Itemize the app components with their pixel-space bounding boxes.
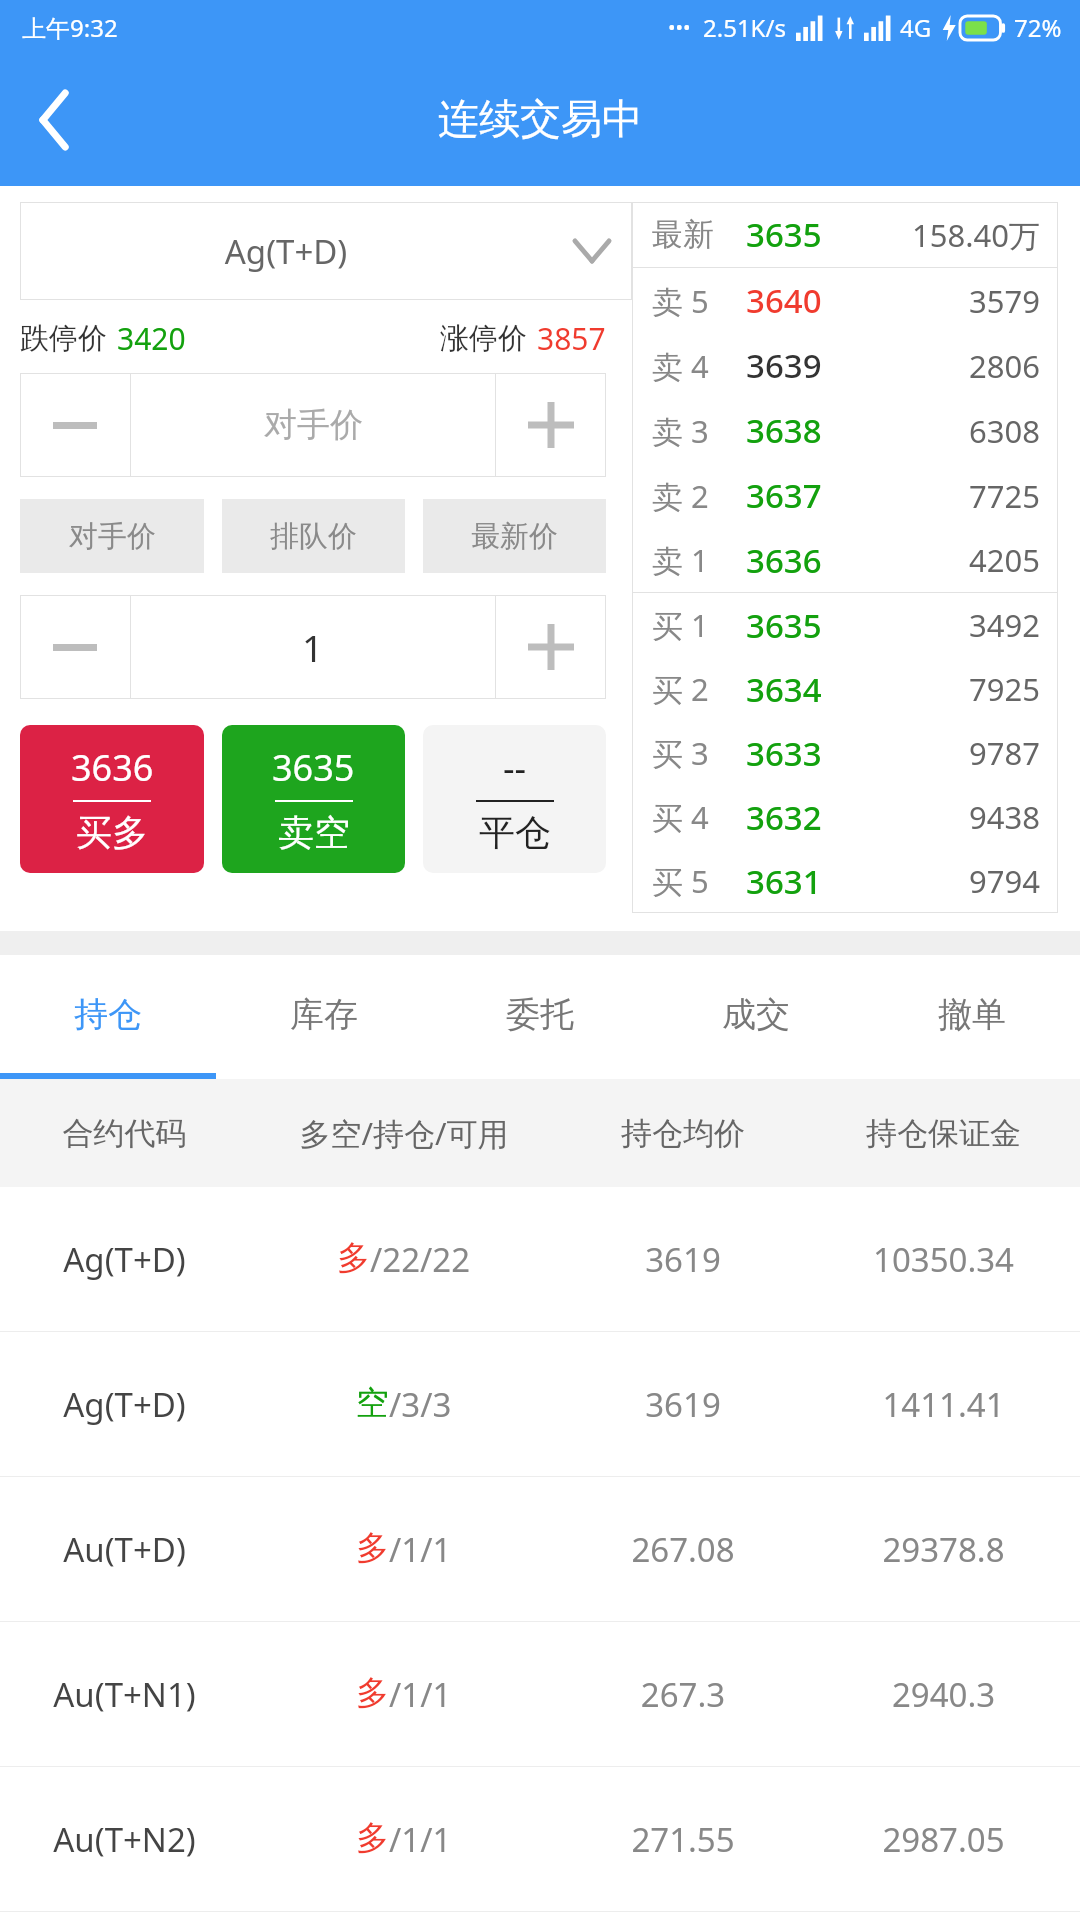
button[interactable]: 卖 3	[632, 398, 1058, 463]
staticText: 最新价	[471, 518, 558, 555]
staticText: 3638	[746, 408, 866, 453]
button[interactable]: Ag(T+D)	[0, 1332, 1080, 1476]
staticText: 9794	[866, 860, 1040, 902]
button[interactable]: 卖 5	[632, 268, 1058, 333]
button[interactable]: 买 1	[632, 593, 1058, 657]
button[interactable]: 3636	[20, 725, 204, 873]
staticText: 卖 3	[652, 410, 746, 452]
staticText: 7925	[866, 668, 1040, 710]
button[interactable]: 撤单	[864, 955, 1080, 1073]
staticText: 9787	[866, 732, 1040, 774]
staticText: 9438	[866, 796, 1040, 838]
staticText: 买 4	[652, 796, 746, 838]
staticText: Ag(T+D)	[0, 1382, 249, 1427]
button[interactable]: --	[423, 725, 606, 873]
staticText: 买 5	[652, 860, 746, 902]
staticText: 271.55	[559, 1817, 807, 1862]
button[interactable]: Increase	[496, 373, 606, 477]
staticText: /3/3	[389, 1382, 452, 1427]
staticText: 最新	[652, 215, 746, 254]
staticText: 持仓	[74, 993, 142, 1036]
staticText: 3639	[746, 343, 866, 388]
button[interactable]: 最新价	[423, 499, 606, 573]
button[interactable]: 卖 1	[632, 528, 1058, 592]
staticText: 跌停价	[20, 320, 107, 357]
button[interactable]: Decrease	[20, 595, 130, 699]
button[interactable]: 持仓	[0, 955, 216, 1073]
staticText: 成交	[722, 993, 790, 1036]
button[interactable]: Back	[0, 54, 110, 186]
staticText: 2806	[866, 345, 1040, 387]
button[interactable]: Ag(T+D)	[20, 202, 632, 300]
staticText: 买 2	[652, 668, 746, 710]
staticText: 3635	[746, 212, 866, 257]
button[interactable]: 排队价	[222, 499, 405, 573]
staticText: 3635	[746, 603, 866, 648]
staticText: 1	[302, 622, 324, 672]
staticText: 上午9:32	[22, 11, 118, 44]
staticText: 1411.41	[807, 1382, 1080, 1427]
button[interactable]: Au(T+D)	[0, 1477, 1080, 1621]
staticText: •••	[668, 14, 691, 41]
staticText: 158.40万	[866, 214, 1040, 256]
button[interactable]: Au(T+N2)	[0, 1767, 1080, 1911]
staticText: /1/1	[389, 1527, 452, 1572]
button[interactable]: Au(T+N1)	[0, 1622, 1080, 1766]
staticText: 卖 2	[652, 475, 746, 517]
staticText: /1/1	[389, 1672, 452, 1717]
staticText: 4G	[900, 11, 932, 44]
button[interactable]: 买 2	[632, 657, 1058, 721]
staticText: 排队价	[270, 518, 357, 555]
staticText: 2940.3	[807, 1672, 1080, 1717]
button[interactable]: 卖 4	[632, 333, 1058, 398]
staticText: 买 1	[652, 604, 746, 646]
button[interactable]: 成交	[648, 955, 864, 1073]
staticText: 2987.05	[807, 1817, 1080, 1862]
button[interactable]: Increase	[496, 595, 606, 699]
staticText: /1/1	[389, 1817, 452, 1862]
staticText: Au(T+N1)	[0, 1672, 249, 1717]
button[interactable]: 买 4	[632, 785, 1058, 849]
button[interactable]: 买 5	[632, 849, 1058, 913]
staticText: /22/22	[370, 1237, 471, 1282]
staticText: 对手价	[264, 404, 363, 446]
button[interactable]: 买 3	[632, 721, 1058, 785]
button[interactable]: Ag(T+D)	[0, 1187, 1080, 1331]
staticText: Au(T+N2)	[0, 1817, 249, 1862]
staticText: 撤单	[938, 993, 1006, 1036]
staticText: 卖 4	[652, 345, 746, 387]
staticText: 10350.34	[807, 1237, 1080, 1282]
button[interactable]: 库存	[216, 955, 432, 1073]
staticText: 卖 1	[652, 539, 746, 581]
staticText: 多空/持仓/可用	[249, 1112, 559, 1154]
staticText: 72%	[1014, 11, 1062, 44]
staticText: 多	[356, 1527, 389, 1569]
staticText: 267.08	[559, 1527, 807, 1572]
staticText: 29378.8	[807, 1527, 1080, 1572]
staticText: Ag(T+D)	[0, 1237, 249, 1282]
staticText: 3636	[746, 538, 866, 583]
staticText: 3636	[71, 743, 154, 792]
staticText: 持仓均价	[559, 1114, 807, 1153]
staticText: 6308	[866, 410, 1040, 452]
staticText: 2.51K/s	[703, 11, 786, 44]
staticText: 4205	[866, 539, 1040, 581]
button[interactable]: 委托	[432, 955, 648, 1073]
staticText: 买多	[76, 810, 148, 855]
button[interactable]: Decrease	[20, 373, 130, 477]
button[interactable]: 最新	[632, 202, 1058, 267]
staticText: 3631	[746, 859, 866, 904]
staticText: 连续交易中	[438, 94, 643, 146]
button[interactable]: 卖 2	[632, 463, 1058, 528]
staticText: 卖 5	[652, 280, 746, 322]
staticText: 3634	[746, 667, 866, 712]
staticText: 买 3	[652, 732, 746, 774]
staticText: 委托	[506, 993, 574, 1036]
staticText: 多	[337, 1237, 370, 1279]
button[interactable]: 对手价	[20, 499, 204, 573]
staticText: 3633	[746, 731, 866, 776]
button[interactable]: 3635	[222, 725, 405, 873]
staticText: Ag(T+D)	[20, 229, 552, 274]
staticText: 3635	[272, 743, 355, 792]
staticText: 合约代码	[0, 1114, 249, 1153]
